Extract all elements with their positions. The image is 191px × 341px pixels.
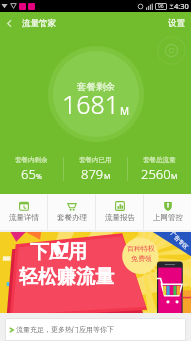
staticText: M (104, 172, 111, 182)
staticText: 96 (158, 3, 164, 10)
staticText: 套餐剩余 (77, 81, 115, 93)
staticText: 广告专区 (169, 232, 189, 251)
staticText: 上网管控 (153, 213, 183, 222)
button[interactable]: 套餐办理 (48, 194, 95, 230)
staticText: 65 (21, 165, 36, 183)
button[interactable]: Back (0, 12, 19, 34)
staticText: 免费领 (131, 254, 152, 263)
staticText: M (120, 104, 130, 118)
staticText: M (171, 172, 178, 182)
staticText: 下应用 (30, 240, 87, 264)
staticText: 套餐内已用 (79, 156, 112, 164)
staticText: 4:30 (174, 1, 189, 11)
staticText: 设置 (168, 18, 185, 29)
staticText: 套餐办理 (57, 213, 87, 222)
staticText: 流量管家 (22, 18, 56, 29)
button[interactable]: 上网管控 (144, 194, 191, 230)
staticText: 879 (81, 165, 104, 183)
button[interactable]: 设置 (168, 12, 185, 34)
staticText: 1681 (62, 87, 120, 121)
staticText: 2560 (141, 165, 171, 183)
staticText: 套餐内剩余 (15, 156, 48, 164)
button[interactable]: 流量充足，更多热门应用等你下 (5, 318, 186, 341)
staticText: 流量详情 (9, 213, 39, 222)
staticText: 百种特权 (127, 244, 155, 253)
staticText: 流量报告 (105, 213, 135, 222)
staticText: 流量充足，更多热门应用等你下 (16, 325, 114, 334)
staticText: 套餐总流量 (143, 156, 176, 164)
button[interactable]: 流量详情 (0, 194, 47, 230)
staticText: 轻松赚流量 (19, 265, 114, 289)
button[interactable]: 流量报告 (96, 194, 143, 230)
staticText: % (36, 172, 42, 182)
button[interactable]: 下应用 (0, 232, 191, 313)
